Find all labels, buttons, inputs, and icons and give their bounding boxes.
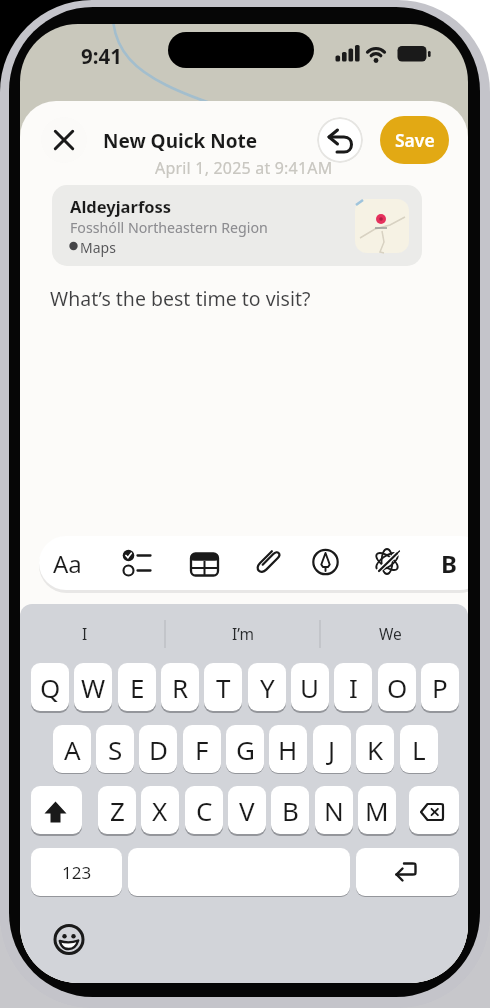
staticText: N (324, 793, 344, 828)
staticText: K (367, 732, 384, 767)
staticText: April 1, 2025 at 9:41AM (155, 157, 333, 179)
staticText: Aa (53, 547, 82, 580)
staticText: F (195, 732, 209, 767)
staticText: U (300, 670, 320, 705)
staticText: H (278, 732, 298, 767)
staticText: D (149, 732, 168, 767)
staticText: V (239, 793, 255, 828)
staticText: W (81, 670, 106, 705)
staticText: X (152, 793, 168, 828)
staticText: Aldeyjarfoss (70, 195, 172, 217)
staticText: We (379, 623, 402, 644)
staticText: I (82, 623, 88, 644)
staticText: J (328, 732, 336, 767)
staticText: 9:41 (81, 42, 122, 70)
staticText: Fosshóll Northeastern Region (70, 218, 268, 237)
staticText: B (441, 547, 457, 580)
staticText: What’s the best time to visit? (50, 285, 311, 312)
staticText: C (196, 793, 213, 828)
staticText: P (432, 670, 448, 705)
staticText: Z (110, 793, 125, 828)
staticText: Save (395, 128, 435, 152)
staticText: O (387, 670, 408, 705)
staticText: 123 (62, 861, 92, 884)
staticText: G (236, 732, 255, 767)
staticText: B (282, 793, 299, 828)
staticText: I (349, 670, 358, 705)
staticText: Maps (80, 238, 116, 257)
staticText: T (216, 670, 231, 705)
staticText: R (172, 670, 189, 705)
staticText: E (130, 670, 145, 705)
staticText: I’m (232, 623, 254, 644)
staticText: New Quick Note (103, 128, 258, 154)
staticText: L (412, 732, 426, 767)
staticText: S (108, 732, 123, 767)
staticText: A (64, 732, 81, 767)
staticText: Y (260, 670, 275, 705)
staticText: Q (40, 670, 61, 705)
staticText: M (365, 793, 389, 828)
